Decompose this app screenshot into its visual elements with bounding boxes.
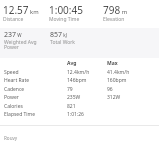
staticText: 237 W <box>4 30 22 40</box>
staticText: Moving Time <box>49 16 80 23</box>
staticText: 798 m <box>103 3 128 17</box>
staticText: 41.4km/h <box>107 69 130 76</box>
staticText: Max <box>107 60 118 67</box>
staticText: Weighted Avg Power <box>4 39 48 50</box>
staticText: Elevation <box>103 16 125 23</box>
staticText: 12.57 km <box>3 3 39 17</box>
staticText: 96 <box>107 86 113 93</box>
staticText: 312W <box>107 94 121 101</box>
staticText: Total Work <box>50 39 75 46</box>
staticText: Heart Rate <box>4 77 30 84</box>
staticText: Cadence <box>4 86 25 93</box>
staticText: 79 <box>67 86 73 93</box>
staticText: 821 <box>67 103 76 110</box>
staticText: Rouvy <box>4 135 18 141</box>
staticText: Calories <box>4 103 23 110</box>
staticText: Distance <box>3 16 24 23</box>
staticText: Elapsed Time <box>4 111 36 118</box>
staticText: 1:01:26 <box>67 111 84 118</box>
staticText: Avg <box>67 60 77 67</box>
staticText: 857 kJ <box>50 30 67 40</box>
staticText: 146bpm <box>67 77 87 84</box>
staticText: 160bpm <box>107 77 127 84</box>
staticText: 1:00:45 <box>49 3 83 17</box>
staticText: 12.4km/h <box>67 69 90 76</box>
staticText: 235W <box>67 94 81 101</box>
staticText: Power <box>4 94 19 101</box>
staticText: Speed <box>4 69 19 76</box>
